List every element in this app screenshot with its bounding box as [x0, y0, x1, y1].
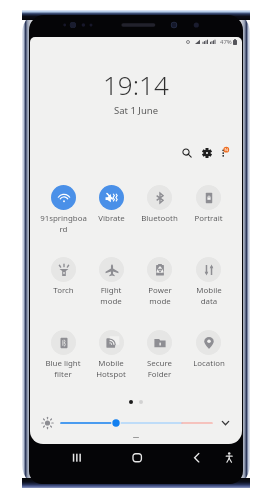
staticText: Bluetooth [141, 213, 178, 224]
button[interactable]: Back [184, 445, 210, 471]
button[interactable]: Mobile Hotspot [87, 330, 135, 379]
button[interactable]: Flight mode [87, 257, 135, 306]
staticText: 19:14 [103, 67, 169, 102]
staticText: Mobile Hotspot [96, 358, 126, 379]
button[interactable]: Settings [197, 143, 217, 163]
staticText: Mobile data [196, 285, 222, 306]
staticText: 47% [220, 38, 232, 46]
staticText: Portrait [194, 213, 223, 224]
staticText: Secure Folder [147, 358, 172, 379]
button[interactable]: Torch [39, 257, 87, 296]
staticText: 91springboa rd [40, 213, 87, 234]
button[interactable]: 91springboa rd [39, 185, 87, 234]
staticText: Blue light filter [45, 358, 81, 379]
button[interactable]: More options [216, 143, 236, 163]
button[interactable]: Vibrate [87, 185, 135, 224]
button[interactable]: Location [184, 330, 233, 369]
staticText: Vibrate [98, 213, 125, 224]
button[interactable]: Search [177, 143, 197, 163]
staticText: Torch [53, 285, 74, 296]
button[interactable]: Accessibility [217, 445, 241, 471]
button[interactable]: Blue light filter [39, 330, 87, 379]
button[interactable]: Portrait [184, 185, 233, 224]
staticText: Flight mode [100, 285, 122, 306]
button[interactable]: Power mode [135, 257, 184, 306]
staticText: Sat 1 June [114, 104, 159, 117]
button[interactable]: Secure Folder [135, 330, 184, 379]
staticText: Power mode [148, 285, 172, 306]
button[interactable]: Recents [64, 445, 90, 471]
staticText: Location [193, 358, 225, 369]
button[interactable]: Mobile data [184, 257, 233, 306]
button[interactable]: Bluetooth [135, 185, 184, 224]
button[interactable]: Home [124, 445, 150, 471]
